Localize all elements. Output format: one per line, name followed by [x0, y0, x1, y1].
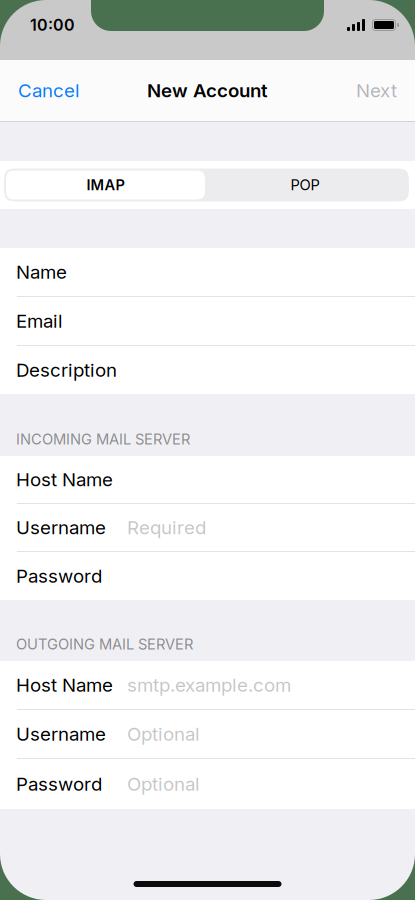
staticText: Name — [16, 261, 67, 283]
staticText: Email — [16, 310, 63, 332]
button[interactable]: Username — [0, 710, 415, 759]
staticText: INCOMING MAIL SERVER — [16, 430, 190, 448]
staticText: Required — [127, 516, 206, 539]
button[interactable]: Description — [0, 346, 415, 394]
button[interactable]: IMAP — [6, 170, 205, 199]
button[interactable]: Email — [0, 297, 415, 346]
button[interactable]: Password — [0, 759, 415, 809]
staticText: Password — [16, 565, 102, 587]
button[interactable]: Next — [342, 60, 415, 121]
staticText: Description — [16, 359, 117, 381]
staticText: IMAP — [86, 176, 124, 194]
button[interactable]: Name — [0, 248, 415, 297]
button[interactable]: Password — [0, 552, 415, 600]
staticText: Password — [16, 773, 102, 795]
staticText: Cancel — [18, 79, 80, 102]
staticText: Optional — [127, 723, 200, 745]
button[interactable]: POP — [205, 170, 405, 199]
button[interactable]: Username — [0, 504, 415, 552]
staticText: Host Name — [16, 468, 113, 491]
staticText: Username — [16, 516, 106, 539]
button[interactable]: Host Name — [0, 456, 415, 504]
staticText: Username — [16, 723, 106, 745]
staticText: OUTGOING MAIL SERVER — [16, 635, 193, 653]
staticText: smtp.example.com — [127, 674, 291, 696]
staticText: Next — [356, 79, 397, 102]
staticText: Optional — [127, 773, 200, 795]
button[interactable]: Host Name — [0, 661, 415, 710]
staticText: Host Name — [16, 674, 113, 696]
staticText: POP — [290, 176, 319, 194]
button[interactable]: Cancel — [0, 60, 94, 121]
staticText: New Account — [147, 79, 268, 102]
staticText: 10:00 — [30, 15, 75, 35]
